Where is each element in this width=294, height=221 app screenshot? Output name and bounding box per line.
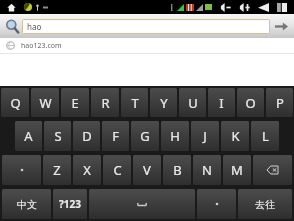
button[interactable]: hao — [22, 19, 270, 34]
button[interactable]: F — [102, 121, 129, 151]
button[interactable]: D — [73, 121, 100, 151]
button[interactable]: E — [61, 88, 89, 117]
button[interactable]: C — [103, 155, 131, 185]
button[interactable]: O — [237, 88, 264, 117]
staticText: X — [83, 161, 91, 179]
staticText: A — [24, 127, 33, 145]
button[interactable]: N — [193, 155, 221, 185]
staticText: O — [245, 94, 256, 112]
staticText: U — [188, 94, 198, 112]
button[interactable]: M — [223, 155, 251, 185]
staticText: Z — [53, 161, 61, 179]
button[interactable]: R — [91, 88, 119, 117]
staticText: N — [202, 161, 212, 179]
button[interactable]: 去往 — [238, 189, 292, 219]
button[interactable]: Y — [150, 88, 177, 117]
staticText: V — [143, 161, 151, 179]
staticText: K — [231, 127, 240, 145]
staticText: I — [219, 94, 224, 112]
button[interactable]: B — [163, 155, 191, 185]
staticText: W — [39, 94, 52, 112]
staticText: R — [101, 94, 110, 112]
button[interactable]: Period — [197, 189, 236, 219]
staticText: C — [113, 161, 122, 179]
button[interactable]: X — [73, 155, 101, 185]
button[interactable]: ?123 — [53, 189, 87, 219]
staticText: 中文 — [17, 198, 37, 211]
staticText: E — [71, 94, 79, 112]
staticText: B — [173, 161, 182, 179]
button[interactable]: T — [121, 88, 148, 117]
button[interactable]: S — [44, 121, 71, 151]
button[interactable]: L — [251, 121, 279, 151]
staticText: F — [112, 127, 119, 145]
button[interactable]: Backspace — [253, 155, 292, 185]
staticText: G — [140, 127, 150, 145]
staticText: 去往 — [255, 198, 275, 211]
button[interactable]: V — [133, 155, 161, 185]
button[interactable]: G — [131, 121, 159, 151]
button[interactable]: A — [15, 121, 42, 151]
button[interactable]: 中文 — [2, 189, 51, 219]
button[interactable]: H — [161, 121, 189, 151]
button[interactable]: W — [31, 88, 59, 117]
staticText: ?123 — [59, 197, 81, 211]
staticText: S — [54, 127, 62, 145]
staticText: Y — [160, 94, 168, 112]
button[interactable]: Recent apps — [276, 2, 288, 12]
button[interactable]: Home — [6, 2, 16, 12]
button[interactable]: Period — [2, 155, 41, 185]
button[interactable]: Back — [257, 2, 270, 12]
button[interactable]: Volume down — [219, 2, 232, 12]
button[interactable]: hao123.com — [0, 38, 294, 53]
button[interactable]: Q — [1, 88, 29, 117]
staticText: hao — [27, 21, 42, 32]
staticText: H — [170, 127, 180, 145]
button[interactable]: Space — [89, 189, 195, 219]
button[interactable]: Search — [2, 16, 22, 36]
button[interactable]: J — [191, 121, 219, 151]
button[interactable]: K — [221, 121, 249, 151]
button[interactable]: P — [266, 88, 293, 117]
button[interactable]: Z — [43, 155, 71, 185]
staticText: T — [131, 94, 139, 112]
staticText: hao123.com — [21, 41, 62, 51]
button[interactable]: Volume up — [238, 2, 251, 12]
button[interactable]: U — [179, 88, 206, 117]
staticText: L — [262, 127, 269, 145]
button[interactable]: Go — [270, 14, 292, 38]
staticText: Q — [10, 94, 21, 112]
staticText: M — [231, 161, 243, 179]
staticText: P — [276, 94, 284, 112]
staticText: D — [82, 127, 92, 145]
button[interactable]: I — [208, 88, 235, 117]
staticText: J — [203, 127, 207, 145]
